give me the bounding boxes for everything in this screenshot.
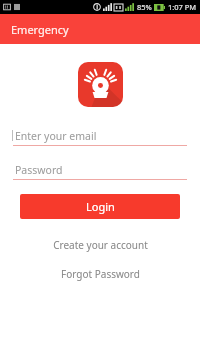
staticText: Emergency — [11, 22, 69, 37]
staticText: 85% — [137, 2, 152, 12]
staticText: Create your account — [53, 238, 148, 252]
button[interactable]: Enter your email — [13, 126, 187, 146]
other: Emergency alarm logo — [78, 62, 123, 107]
button[interactable]: Forgot Password — [53, 264, 148, 284]
staticText: Login — [86, 199, 115, 214]
button[interactable]: Create your account — [45, 235, 156, 255]
staticText: Forgot Password — [61, 267, 140, 281]
staticText: Enter your email — [15, 129, 97, 143]
staticText: Password — [15, 163, 63, 177]
button[interactable]: Login — [20, 194, 180, 219]
staticText: 1:07 PM — [168, 2, 197, 12]
button[interactable]: Password — [13, 160, 187, 180]
